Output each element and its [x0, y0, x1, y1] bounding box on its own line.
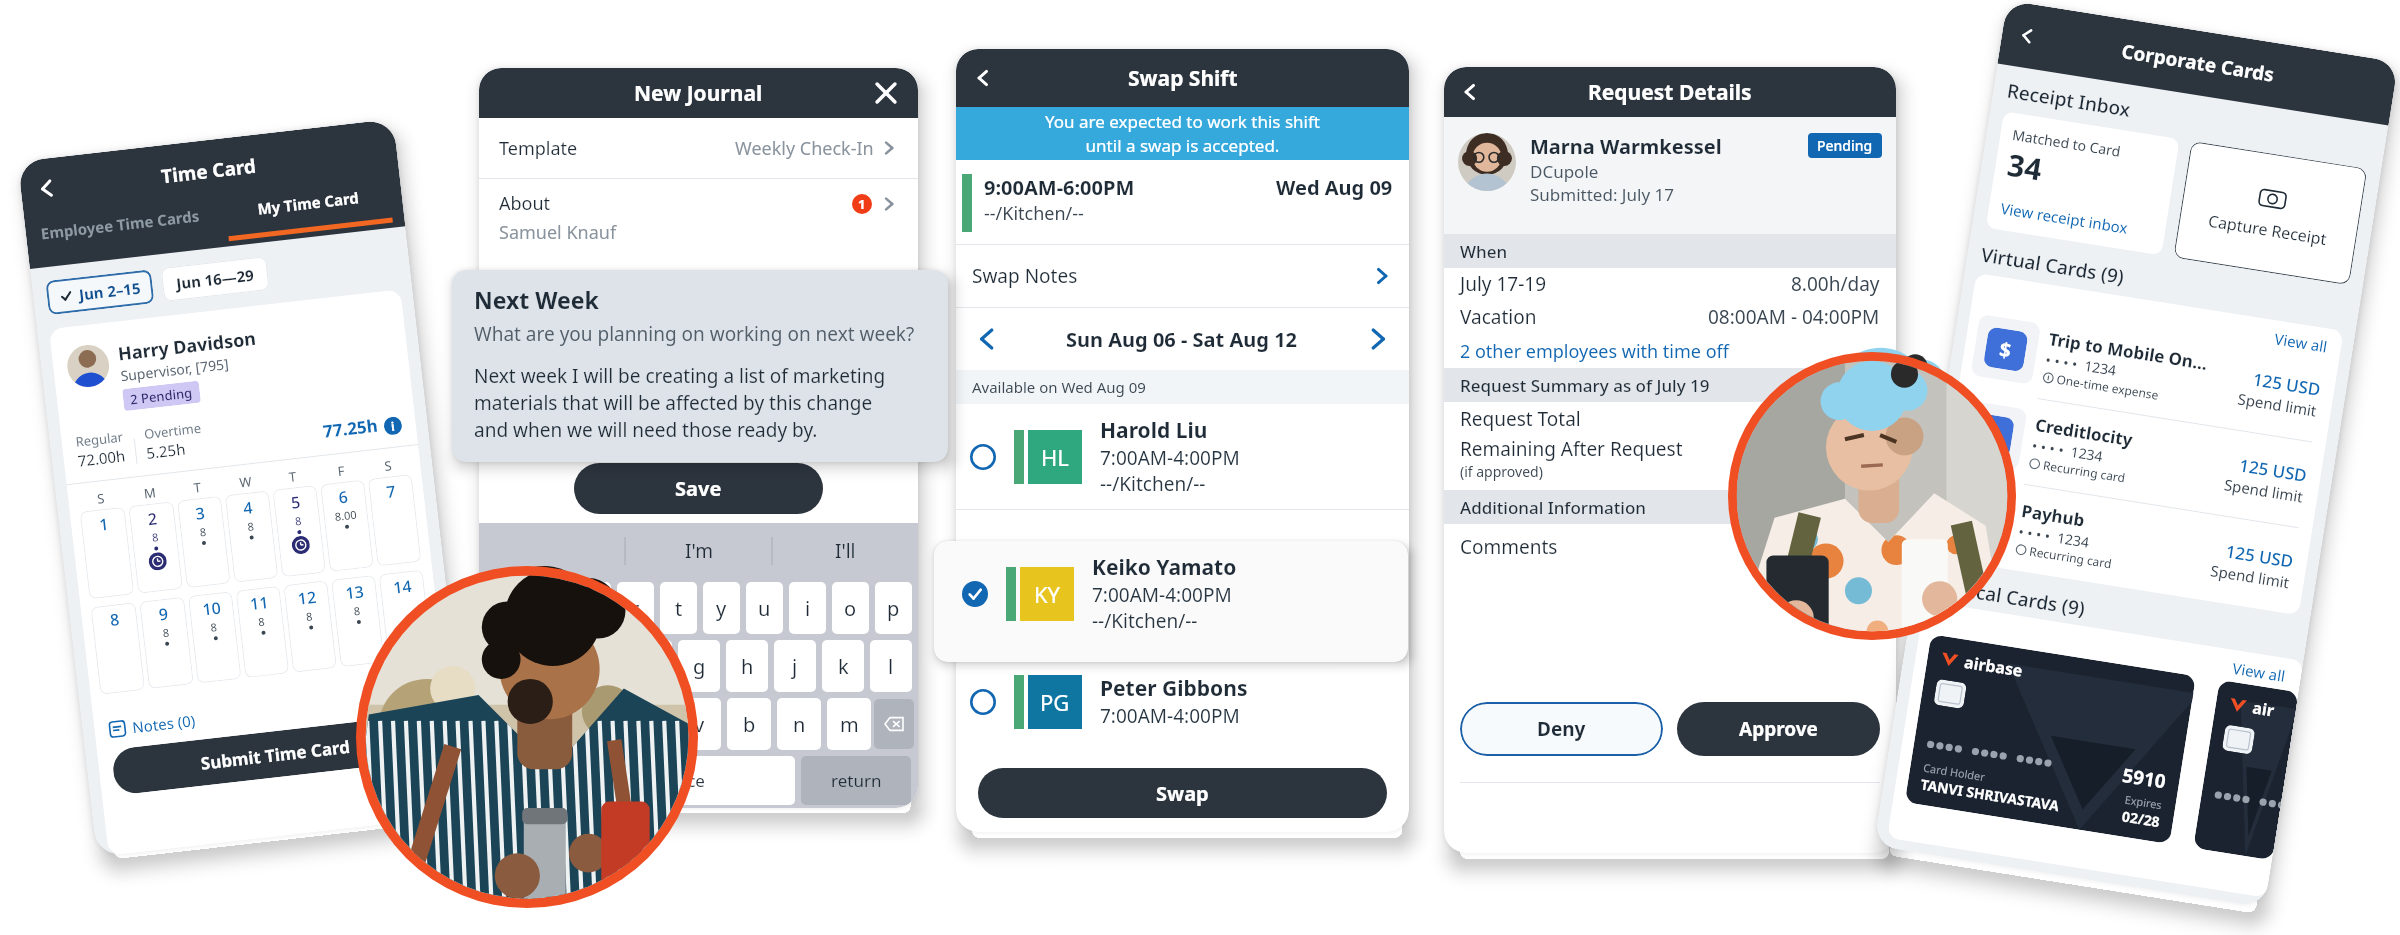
button[interactable]: s: [534, 640, 576, 692]
button[interactable]: Swap Notes: [956, 245, 1409, 307]
button[interactable]: Submit Time Card: [111, 713, 440, 796]
staticText: Creditlocity: [2034, 413, 2135, 451]
button[interactable]: 6: [320, 479, 374, 572]
staticText: $: [1998, 336, 2014, 364]
button[interactable]: Comments: [1444, 524, 1896, 570]
staticText: 5.25h: [145, 438, 187, 463]
staticText: Spend limit: [2223, 474, 2305, 507]
button[interactable]: $: [1958, 300, 2339, 444]
button[interactable]: Back: [968, 63, 998, 93]
button[interactable]: p: [875, 582, 912, 634]
button[interactable]: 9: [139, 597, 194, 689]
button[interactable]: 10: [188, 591, 242, 684]
button[interactable]: 14: [379, 569, 432, 662]
staticText: (if approved): [1460, 462, 1543, 481]
button[interactable]: j: [774, 640, 816, 692]
button[interactable]: 2 other employees with time off: [1444, 334, 1896, 368]
button[interactable]: I'll: [773, 538, 918, 564]
button[interactable]: z: [526, 698, 571, 750]
staticText: t: [675, 595, 683, 622]
staticText: r: [631, 595, 640, 622]
staticText: Corporate Cards: [2120, 38, 2276, 88]
button[interactable]: Previous week: [972, 324, 1002, 354]
button[interactable]: Matched to Card: [1986, 111, 2180, 255]
button[interactable]: t: [660, 582, 697, 634]
staticText: Additional Information: [1460, 496, 1646, 519]
button[interactable]: x: [577, 698, 621, 750]
button[interactable]: return: [801, 756, 911, 805]
button[interactable]: 1: [80, 507, 134, 599]
button[interactable]: Shift: [483, 699, 523, 749]
button[interactable]: Back: [1456, 78, 1484, 106]
staticText: View all: [2273, 328, 2329, 356]
button[interactable]: Employee Time Cards: [25, 204, 218, 269]
button[interactable]: Back: [2012, 21, 2042, 51]
button[interactable]: Next week: [1363, 324, 1393, 354]
button[interactable]: 4: [225, 490, 278, 583]
staticText: Spend limit: [2236, 388, 2318, 421]
button[interactable]: 12: [283, 580, 337, 673]
staticText: Remaining After Request: [1460, 436, 1683, 462]
button[interactable]: a: [485, 640, 528, 692]
button[interactable]: HL: [956, 404, 1409, 509]
button[interactable]: q: [485, 582, 523, 634]
button[interactable]: 13: [331, 575, 385, 667]
button[interactable]: About: [479, 179, 918, 257]
button[interactable]: n: [777, 698, 821, 750]
button[interactable]: View all: [1972, 273, 2344, 359]
button[interactable]: Approve: [1677, 702, 1880, 756]
button[interactable]: space: [568, 756, 795, 805]
button[interactable]: d: [582, 640, 624, 692]
staticText: 123: [510, 770, 538, 792]
button[interactable]: 7: [368, 474, 421, 566]
button[interactable]: g: [678, 640, 720, 692]
button[interactable]: Jun 16—29: [174, 258, 256, 300]
button[interactable]: v: [677, 698, 721, 750]
button[interactable]: Backspace: [874, 699, 914, 749]
button[interactable]: e: [573, 582, 611, 634]
staticText: 125 USD: [2251, 367, 2322, 401]
button[interactable]: r: [617, 582, 654, 634]
button[interactable]: 8: [90, 602, 145, 695]
button[interactable]: Jun 2–15: [57, 271, 142, 314]
staticText: s: [550, 653, 560, 680]
button[interactable]: o: [832, 582, 869, 634]
button[interactable]: f: [630, 640, 672, 692]
staticText: j: [792, 653, 798, 680]
button[interactable]: 3: [177, 496, 231, 588]
staticText: x: [594, 711, 605, 738]
button[interactable]: Template: [479, 118, 918, 178]
staticText: View all: [2231, 658, 2287, 686]
button[interactable]: Back: [29, 171, 64, 206]
staticText: W: [238, 472, 253, 492]
button[interactable]: View all: [1920, 601, 2304, 688]
button[interactable]: i: [789, 582, 826, 634]
button[interactable]: $: [1945, 386, 2326, 529]
button[interactable]: 5: [272, 485, 326, 577]
button[interactable]: h: [726, 640, 768, 692]
button[interactable]: Capture Receipt: [2173, 141, 2367, 285]
button[interactable]: l: [870, 640, 912, 692]
button[interactable]: I'm: [626, 538, 771, 564]
button[interactable]: Swap: [978, 768, 1387, 818]
staticText: p: [887, 595, 900, 622]
button[interactable]: k: [822, 640, 864, 692]
button[interactable]: $: [1931, 472, 2312, 615]
button[interactable]: Deny: [1460, 702, 1663, 756]
button[interactable]: c: [627, 698, 671, 750]
button[interactable]: 11: [236, 586, 289, 678]
button[interactable]: KY: [934, 541, 1408, 646]
button[interactable]: Close: [872, 79, 900, 107]
button[interactable]: My Time Card: [213, 182, 405, 247]
button[interactable]: u: [746, 582, 783, 634]
staticText: 8: [199, 524, 207, 539]
button[interactable]: 2: [128, 501, 183, 594]
button[interactable]: b: [727, 698, 771, 750]
staticText: $: [1970, 507, 1986, 536]
button[interactable]: y: [703, 582, 740, 634]
button[interactable]: 123: [486, 756, 562, 805]
button[interactable]: PG: [956, 662, 1409, 741]
button[interactable]: Save: [574, 463, 823, 514]
button[interactable]: m: [827, 698, 871, 750]
